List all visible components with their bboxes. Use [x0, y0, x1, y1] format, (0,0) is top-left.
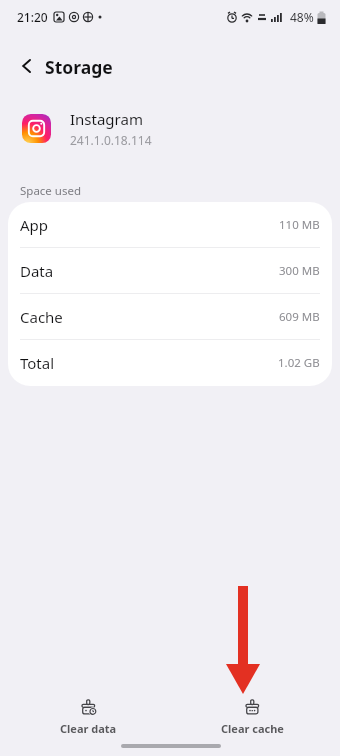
button[interactable]: App — [8, 202, 332, 248]
staticText: Instagram — [70, 109, 143, 129]
button[interactable]: Clear cache — [207, 699, 297, 736]
staticText: Clear cache — [221, 721, 284, 736]
staticText: App — [20, 215, 49, 235]
button[interactable] — [12, 52, 40, 80]
staticText: Storage — [45, 55, 113, 79]
staticText: Clear data — [60, 721, 117, 736]
staticText: Space used — [20, 183, 82, 199]
button[interactable]: Total — [8, 340, 332, 386]
button[interactable]: Cache — [8, 294, 332, 340]
staticText: 1.02 GB — [278, 355, 320, 371]
staticText: 48% — [290, 9, 314, 25]
staticText: Cache — [20, 307, 63, 327]
staticText: Data — [20, 261, 54, 281]
staticText: 609 MB — [279, 309, 320, 325]
staticText: 300 MB — [279, 263, 320, 279]
staticText: 241.1.0.18.114 — [70, 132, 152, 148]
button[interactable]: Data — [8, 248, 332, 294]
staticText: Total — [20, 353, 55, 373]
button[interactable]: Clear data — [43, 699, 133, 736]
staticText: 110 MB — [279, 217, 320, 233]
staticText: 21:20 — [17, 9, 48, 25]
